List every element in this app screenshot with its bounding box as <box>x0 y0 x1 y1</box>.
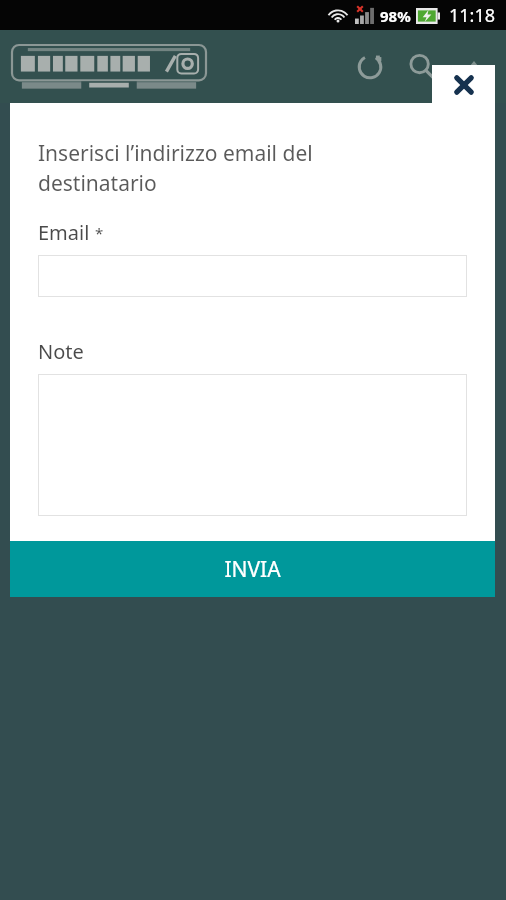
button[interactable]: Note field <box>38 374 467 516</box>
button[interactable]: INVIA <box>10 541 495 597</box>
button[interactable]: Close <box>432 65 495 105</box>
button[interactable]: Email field <box>38 255 467 297</box>
button[interactable]: Search <box>396 41 448 93</box>
staticText: 11:18 <box>449 3 496 28</box>
staticText: Inserisci l’indirizzo email del destinat… <box>38 139 385 197</box>
button[interactable]: Refresh <box>344 41 396 93</box>
staticText: 98% <box>380 6 411 26</box>
button[interactable]: More options <box>448 41 500 93</box>
staticText: Note <box>38 338 84 365</box>
staticText: * <box>95 223 104 243</box>
staticText: Email <box>38 219 90 246</box>
staticText: INVIA <box>224 555 281 584</box>
button[interactable]: Polyglass home <box>10 43 208 99</box>
